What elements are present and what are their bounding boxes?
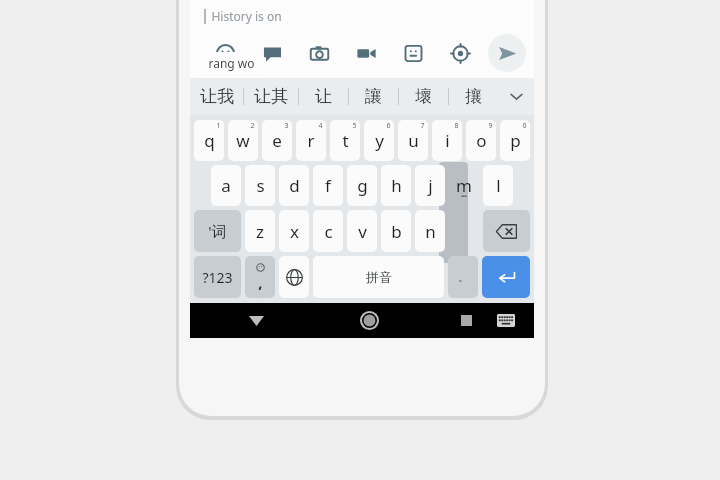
button[interactable]: z — [245, 210, 275, 252]
staticText: 。 — [458, 270, 469, 284]
button[interactable]: h — [381, 165, 411, 206]
staticText: i — [445, 129, 450, 152]
staticText: j — [428, 174, 433, 197]
staticText: v — [358, 220, 367, 243]
staticText: c — [324, 220, 333, 243]
staticText: s — [256, 174, 265, 197]
button[interactable]: Emoji — [202, 38, 249, 68]
button[interactable]: 。 — [448, 256, 478, 298]
button[interactable]: s — [245, 165, 275, 206]
staticText: 讓 — [365, 86, 382, 107]
staticText: 让我 — [200, 86, 234, 107]
button[interactable]: d — [279, 165, 309, 206]
staticText: z — [256, 220, 264, 243]
staticText: 3 — [284, 121, 289, 131]
button[interactable]: Video — [343, 38, 390, 68]
staticText: rang wo — [208, 55, 255, 71]
button[interactable]: c — [313, 210, 343, 252]
button[interactable]: Enter — [482, 256, 530, 298]
button[interactable]: g — [347, 165, 377, 206]
button[interactable]: Home — [347, 303, 391, 338]
staticText: 8 — [454, 121, 459, 131]
staticText: 5 — [352, 121, 357, 131]
staticText: 让其 — [254, 86, 288, 107]
staticText: 攘 — [465, 86, 482, 107]
button[interactable]: 让其 — [244, 78, 298, 115]
button[interactable]: f — [313, 165, 343, 206]
button[interactable]: Location — [437, 38, 484, 68]
button[interactable]: x — [279, 210, 309, 252]
staticText: ••• — [461, 193, 467, 200]
button[interactable]: Send — [488, 34, 526, 72]
button[interactable]: w — [228, 120, 258, 161]
button[interactable]: Stickers — [390, 38, 437, 68]
button[interactable]: 拼音 — [313, 256, 444, 298]
button[interactable]: e — [262, 120, 292, 161]
staticText: 让 — [315, 86, 332, 107]
staticText: History is on — [211, 8, 282, 24]
staticText: , — [258, 272, 263, 292]
button[interactable]: n — [415, 210, 445, 252]
staticText: 0 — [522, 121, 527, 131]
button[interactable]: Change language — [279, 256, 309, 298]
button[interactable]: a — [211, 165, 241, 206]
button[interactable]: Backspace — [483, 210, 530, 252]
staticText: 2 — [250, 121, 255, 131]
button[interactable]: 攘 — [449, 78, 498, 115]
staticText: 9 — [488, 121, 493, 131]
button[interactable]: Recents — [446, 303, 486, 338]
staticText: 壞 — [415, 86, 432, 107]
button[interactable]: Messages — [249, 38, 296, 68]
button[interactable]: More suggestions — [498, 78, 534, 115]
button[interactable]: '词 — [194, 210, 241, 252]
button[interactable]: o — [466, 120, 496, 161]
button[interactable]: u — [398, 120, 428, 161]
staticText: n — [425, 220, 436, 243]
button[interactable]: t — [330, 120, 360, 161]
button[interactable]: i — [432, 120, 462, 161]
button[interactable]: 让我 — [190, 78, 243, 115]
staticText: 1 — [216, 121, 221, 131]
staticText: h — [391, 174, 402, 197]
staticText: q — [204, 129, 215, 152]
staticText: g — [357, 174, 368, 197]
button[interactable]: v — [347, 210, 377, 252]
button[interactable]: 让 — [299, 78, 348, 115]
staticText: l — [496, 174, 501, 197]
staticText: ?123 — [202, 268, 233, 287]
button[interactable]: r — [296, 120, 326, 161]
button[interactable]: y — [364, 120, 394, 161]
staticText: m — [456, 174, 472, 197]
staticText: o — [476, 129, 487, 152]
staticText: 拼音 — [366, 269, 392, 285]
staticText: p — [510, 129, 521, 152]
staticText: 4 — [318, 121, 323, 131]
staticText: b — [391, 220, 402, 243]
staticText: t — [342, 129, 349, 152]
button[interactable]: Back — [234, 303, 278, 338]
staticText: x — [290, 220, 299, 243]
button[interactable]: ?123 — [194, 256, 241, 298]
button[interactable]: m — [449, 165, 479, 206]
button[interactable]: p — [500, 120, 530, 161]
button[interactable]: rang wo — [208, 55, 255, 71]
staticText: d — [289, 174, 300, 197]
staticText: a — [221, 174, 231, 197]
staticText: '词 — [208, 221, 227, 241]
staticText: u — [408, 129, 419, 152]
staticText: 6 — [386, 121, 391, 131]
button[interactable]: 壞 — [399, 78, 448, 115]
staticText: 7 — [420, 121, 425, 131]
button[interactable]: , — [245, 256, 275, 298]
button[interactable]: Switch keyboard — [486, 303, 526, 338]
button[interactable]: j — [415, 165, 445, 206]
button[interactable]: Camera — [296, 38, 343, 68]
staticText: y — [375, 129, 384, 152]
button[interactable]: b — [381, 210, 411, 252]
button[interactable]: l — [483, 165, 513, 206]
button[interactable]: 讓 — [349, 78, 398, 115]
staticText: f — [325, 174, 331, 197]
staticText: r — [307, 129, 315, 152]
staticText: e — [272, 129, 282, 152]
button[interactable]: q — [194, 120, 224, 161]
